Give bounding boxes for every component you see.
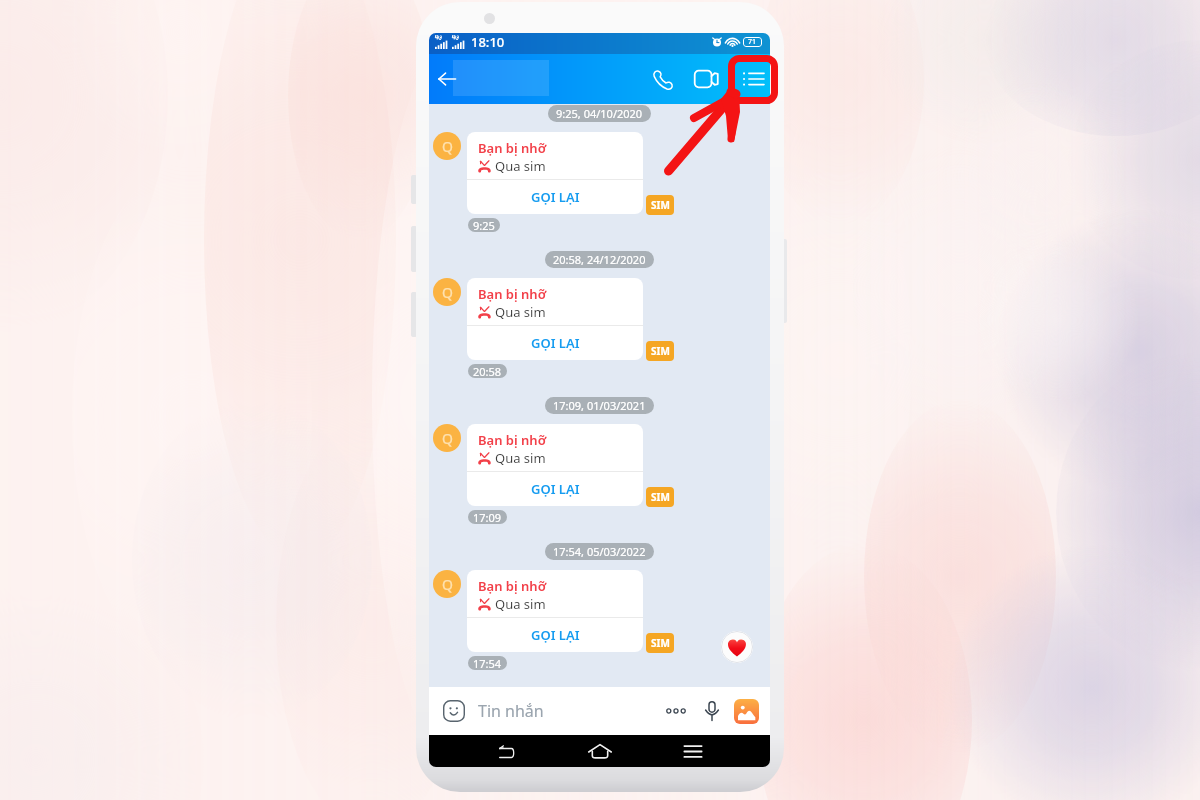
button[interactable]: Conversation options <box>733 59 770 99</box>
button[interactable]: Video call <box>686 59 726 99</box>
staticText: GỌI LẠI <box>531 480 580 498</box>
button[interactable]: Back <box>489 735 523 767</box>
button[interactable]: Back <box>429 61 465 97</box>
button[interactable]: Home <box>583 735 617 767</box>
staticText: 17:54, 05/03/2022 <box>553 544 646 559</box>
staticText: Q <box>442 575 453 594</box>
staticText: SIM <box>651 198 670 212</box>
staticText: SIM <box>651 490 670 504</box>
staticText: 18:10 <box>471 33 505 51</box>
button[interactable]: Gallery <box>734 699 759 724</box>
staticText: 9:25 <box>473 218 495 232</box>
staticText: GỌI LẠI <box>531 626 580 644</box>
button[interactable]: Voice message <box>697 696 727 726</box>
staticText: Bạn bị nhỡ <box>478 431 547 449</box>
staticText: Qua sim <box>495 157 546 175</box>
staticText: 20:58 <box>473 364 502 378</box>
staticText: GỌI LẠI <box>531 188 580 206</box>
button[interactable]: Bạn bị nhỡ <box>467 278 643 325</box>
staticText: Qua sim <box>495 595 546 613</box>
button[interactable]: Contact avatar <box>433 132 461 160</box>
button[interactable]: GỌI LẠI <box>467 180 643 214</box>
staticText: 17:09 <box>473 510 502 524</box>
button[interactable]: Bạn bị nhỡ <box>467 132 643 179</box>
staticText: 17:09, 01/03/2021 <box>553 398 646 413</box>
staticText: Qua sim <box>495 303 546 321</box>
button[interactable]: Bạn bị nhỡ <box>467 424 643 471</box>
button[interactable]: Contact avatar <box>433 424 461 452</box>
staticText: Q <box>442 283 453 302</box>
staticText: 20:58, 24/12/2020 <box>553 252 646 267</box>
staticText: Q <box>442 429 453 448</box>
button[interactable]: GỌI LẠI <box>467 326 643 360</box>
staticText: Bạn bị nhỡ <box>478 139 547 157</box>
staticText: Tin nhắn <box>478 700 544 722</box>
staticText: GỌI LẠI <box>531 334 580 352</box>
button[interactable]: Bạn bị nhỡ <box>467 570 643 617</box>
staticText: 71 <box>748 37 757 47</box>
staticText: SIM <box>651 344 670 358</box>
staticText: Bạn bị nhỡ <box>478 285 547 303</box>
staticText: SIM <box>651 636 670 650</box>
staticText: Qua sim <box>495 449 546 467</box>
staticText: Bạn bị nhỡ <box>478 577 547 595</box>
button[interactable]: More options <box>661 696 691 726</box>
staticText: 17:54 <box>473 656 502 670</box>
staticText: Q <box>442 137 453 156</box>
button[interactable]: Stickers <box>439 696 469 726</box>
button[interactable]: Contact avatar <box>433 278 461 306</box>
button[interactable]: GỌI LẠI <box>467 472 643 506</box>
staticText: 9:25, 04/10/2020 <box>556 106 643 121</box>
button[interactable]: Send heart <box>721 631 753 663</box>
button[interactable]: Call <box>643 59 683 99</box>
button[interactable]: Recent apps <box>676 735 710 767</box>
button[interactable]: Contact avatar <box>433 570 461 598</box>
button[interactable]: GỌI LẠI <box>467 618 643 652</box>
